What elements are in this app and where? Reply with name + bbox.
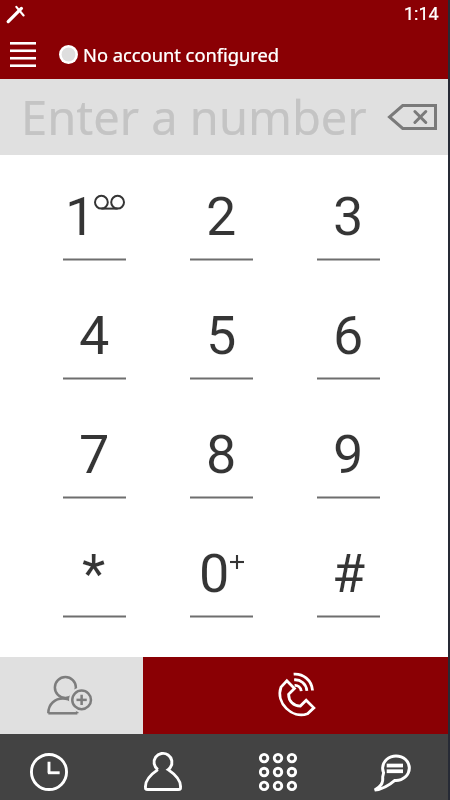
- staticText: Enter a number: [21, 85, 367, 149]
- staticText: 4: [79, 304, 110, 367]
- button[interactable]: Contacts: [112, 734, 224, 800]
- staticText: No account configured: [83, 42, 280, 67]
- button[interactable]: 8: [158, 393, 285, 512]
- staticText: 3: [333, 185, 364, 248]
- button[interactable]: Backspace: [375, 79, 450, 155]
- staticText: 1: [65, 185, 96, 248]
- button[interactable]: 9: [285, 393, 412, 512]
- button[interactable]: 3: [285, 155, 412, 274]
- staticText: 6: [333, 304, 364, 367]
- staticText: #: [332, 542, 366, 605]
- button[interactable]: #: [285, 512, 412, 631]
- staticText: 1:14: [404, 3, 439, 24]
- button[interactable]: Menu: [0, 30, 45, 79]
- button[interactable]: 5: [158, 274, 285, 393]
- staticText: 7: [79, 423, 110, 486]
- button[interactable]: Dialer: [224, 734, 337, 800]
- button[interactable]: 0: [158, 512, 285, 631]
- staticText: 8: [206, 423, 237, 486]
- button[interactable]: Call: [143, 657, 450, 734]
- staticText: *: [82, 542, 106, 605]
- button[interactable]: 6: [285, 274, 412, 393]
- staticText: 5: [206, 304, 237, 367]
- button[interactable]: Chat: [337, 734, 450, 800]
- button[interactable]: 7: [30, 393, 158, 512]
- button[interactable]: *: [30, 512, 158, 631]
- button[interactable]: 2: [158, 155, 285, 274]
- button[interactable]: 4: [30, 274, 158, 393]
- button[interactable]: Add contact: [0, 657, 143, 734]
- staticText: 0: [199, 542, 230, 605]
- button[interactable]: History: [0, 734, 112, 800]
- staticText: 2: [206, 185, 237, 248]
- staticText: 9: [333, 423, 364, 486]
- button[interactable]: 1: [30, 155, 158, 274]
